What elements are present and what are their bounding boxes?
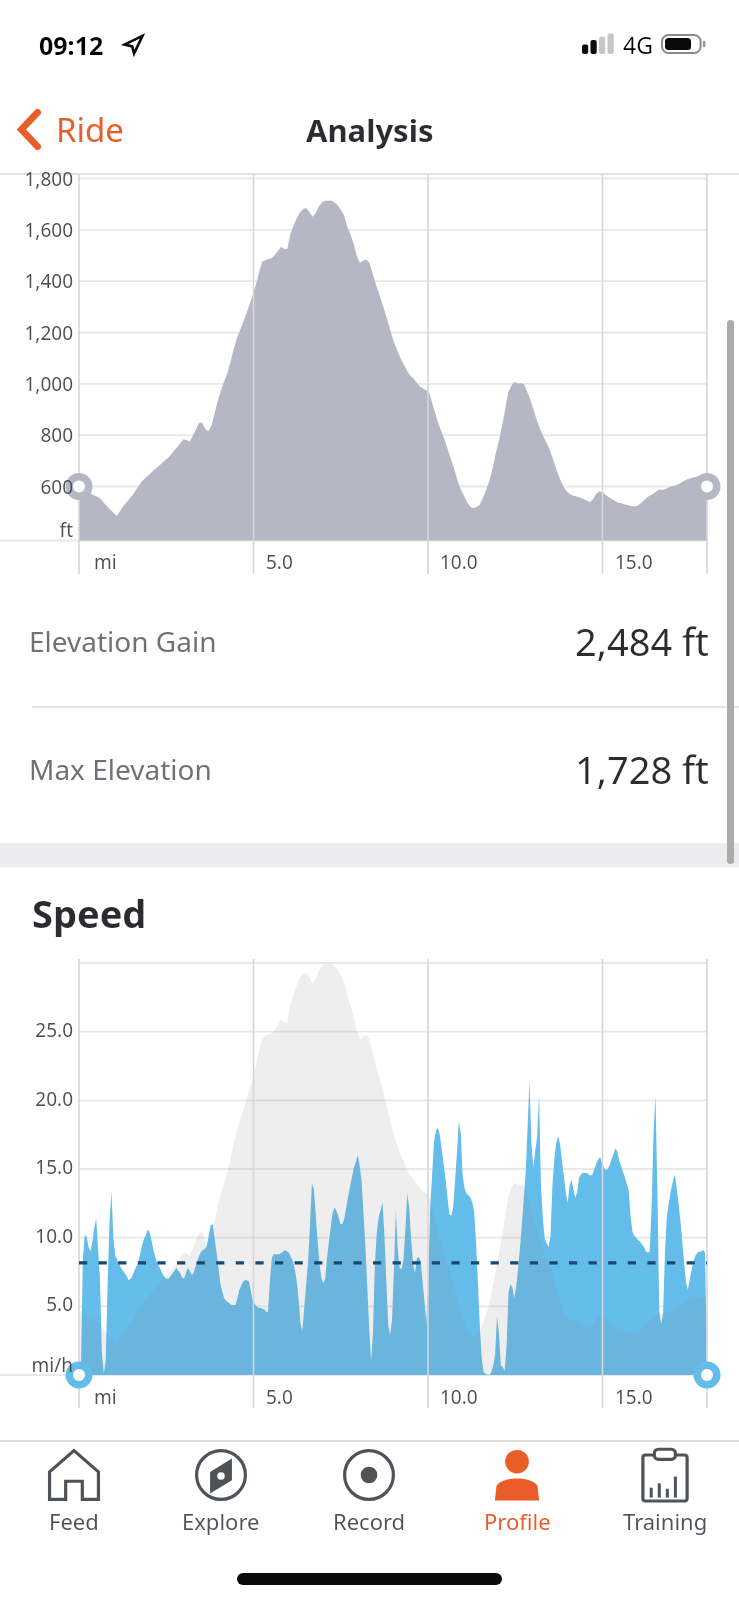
other: Profile (491, 1449, 543, 1501)
staticText: 1,600 (0, 217, 73, 243)
staticText: 5.0 (266, 1384, 293, 1410)
staticText: 20.0 (0, 1086, 73, 1112)
staticText: 1,800 (0, 166, 73, 192)
staticText: 10.0 (0, 1223, 73, 1249)
staticText: 1,000 (0, 371, 73, 397)
button[interactable]: Ride (0, 97, 142, 162)
staticText: 25.0 (0, 1017, 73, 1043)
button[interactable]: Training (591, 1442, 739, 1558)
staticText: 09:12 (39, 28, 104, 62)
staticText: Feed (49, 1506, 99, 1536)
staticText: Max Elevation (29, 750, 212, 788)
staticText: Record (333, 1506, 406, 1536)
staticText: 10.0 (440, 1384, 478, 1410)
staticText: 5.0 (266, 549, 293, 575)
staticText: 2,484 ft (575, 615, 709, 667)
staticText: 15.0 (615, 549, 653, 575)
staticText: Elevation Gain (29, 622, 217, 660)
staticText: mi/h (0, 1352, 73, 1378)
button[interactable]: Record (295, 1442, 443, 1558)
staticText: Profile (484, 1506, 551, 1536)
staticText: ft (0, 517, 73, 543)
staticText: 1,400 (0, 268, 73, 294)
staticText: Ride (56, 107, 124, 152)
other: Record (343, 1449, 395, 1501)
staticText: Speed (32, 887, 147, 939)
staticText: 1,200 (0, 320, 73, 346)
staticText: 600 (0, 474, 73, 500)
button[interactable]: Elevation Gain (0, 582, 739, 706)
staticText: 1,728 ft (575, 743, 709, 795)
staticText: 800 (0, 422, 73, 448)
staticText: 4G (623, 29, 653, 60)
button[interactable]: Explore (147, 1442, 295, 1558)
staticText: 10.0 (440, 549, 478, 575)
staticText: Training (623, 1506, 708, 1536)
staticText: Explore (182, 1506, 260, 1536)
staticText: 5.0 (0, 1291, 73, 1317)
staticText: Analysis (306, 109, 434, 151)
staticText: 15.0 (0, 1154, 73, 1180)
other: Training (639, 1449, 691, 1501)
staticText: mi (94, 1384, 117, 1410)
staticText: mi (94, 549, 117, 575)
button[interactable]: Feed (0, 1442, 147, 1558)
staticText: 15.0 (615, 1384, 653, 1410)
button[interactable]: Max Elevation (0, 708, 739, 836)
other: Explore (195, 1449, 247, 1501)
other: Feed (48, 1449, 100, 1501)
button[interactable]: Profile (443, 1442, 591, 1558)
